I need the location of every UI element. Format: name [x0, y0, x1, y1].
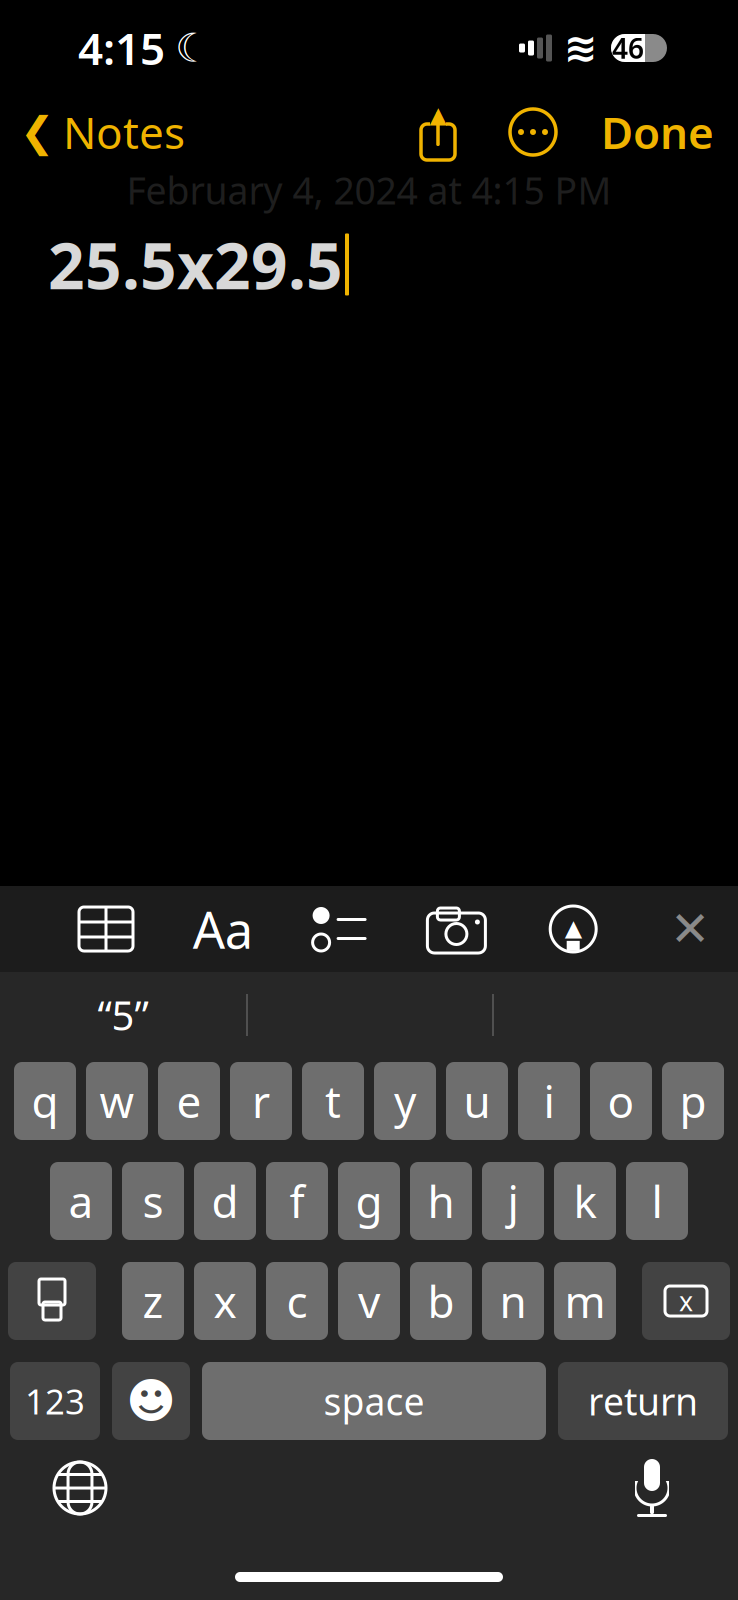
staticText: ▲	[429, 102, 446, 128]
button[interactable]: Close	[652, 893, 728, 965]
staticText: 4:15	[78, 19, 165, 77]
button[interactable]: Done	[601, 95, 738, 169]
button[interactable]: Camera	[418, 893, 494, 965]
button[interactable]: “5”	[0, 980, 246, 1050]
button[interactable]: q	[14, 1062, 76, 1140]
button[interactable]: i	[518, 1062, 580, 1140]
button[interactable]: Dictate	[608, 1449, 696, 1527]
staticText: ☾	[175, 25, 211, 71]
button[interactable]: ❮	[0, 95, 185, 169]
button[interactable]: Switch keyboard	[36, 1449, 124, 1527]
staticText: w	[99, 1072, 134, 1130]
staticText: u	[463, 1072, 490, 1130]
button[interactable]: a	[50, 1162, 112, 1240]
button[interactable]: space	[202, 1362, 546, 1440]
staticText: Notes	[63, 103, 185, 161]
button[interactable]: Shift	[8, 1262, 96, 1340]
staticText: 123	[25, 1378, 85, 1424]
staticText: x	[679, 1283, 693, 1319]
button[interactable]: Table	[68, 893, 144, 965]
staticText: ❮	[20, 108, 55, 155]
staticText: y	[394, 1072, 416, 1130]
staticText: p	[679, 1072, 706, 1130]
button[interactable]: Emoji	[112, 1362, 190, 1440]
button[interactable]: s	[122, 1162, 184, 1240]
button[interactable]: l	[626, 1162, 688, 1240]
staticText: February 4, 2024 at 4:15 PM	[126, 165, 611, 215]
staticText: Done	[601, 103, 714, 161]
staticText: Aa	[193, 895, 253, 963]
staticText: o	[607, 1072, 634, 1130]
staticText: 46	[612, 29, 644, 67]
button[interactable]: x	[194, 1262, 256, 1340]
staticText: f	[289, 1172, 304, 1230]
staticText: 25.5x29.5	[48, 222, 343, 307]
button[interactable]: e	[158, 1062, 220, 1140]
staticText: n	[499, 1272, 526, 1330]
button[interactable]: Share	[415, 105, 461, 159]
staticText: h	[427, 1172, 454, 1230]
staticText: ▲	[565, 915, 582, 941]
button[interactable]: f	[266, 1162, 328, 1240]
staticText: return	[588, 1376, 698, 1426]
staticText: z	[142, 1272, 163, 1330]
button[interactable]: y	[374, 1062, 436, 1140]
staticText: “5”	[97, 988, 148, 1041]
button[interactable]: k	[554, 1162, 616, 1240]
button[interactable]: h	[410, 1162, 472, 1240]
staticText: m	[564, 1272, 605, 1330]
button[interactable]: w	[86, 1062, 148, 1140]
staticText: space	[323, 1376, 424, 1426]
button[interactable]: v	[338, 1262, 400, 1340]
button[interactable]: 123	[10, 1362, 100, 1440]
button[interactable]: g	[338, 1162, 400, 1240]
button[interactable]: Markup	[535, 893, 611, 965]
button[interactable]: return	[558, 1362, 728, 1440]
button[interactable]: Format	[185, 893, 261, 965]
button[interactable]: n	[482, 1262, 544, 1340]
staticText: ☻	[126, 1374, 176, 1428]
staticText: t	[325, 1072, 341, 1130]
button[interactable]: c	[266, 1262, 328, 1340]
button[interactable]: j	[482, 1162, 544, 1240]
button[interactable]: m	[554, 1262, 616, 1340]
button[interactable]: o	[590, 1062, 652, 1140]
staticText: s	[142, 1172, 163, 1230]
button[interactable]: t	[302, 1062, 364, 1140]
button[interactable]: u	[446, 1062, 508, 1140]
button[interactable]: p	[662, 1062, 724, 1140]
button[interactable]: More	[509, 108, 557, 156]
button[interactable]: Delete	[642, 1262, 730, 1340]
button[interactable]: d	[194, 1162, 256, 1240]
button[interactable]: r	[230, 1062, 292, 1140]
staticText: ✕	[670, 902, 710, 956]
button[interactable]: b	[410, 1262, 472, 1340]
staticText: g	[355, 1172, 382, 1230]
staticText: e	[176, 1072, 201, 1130]
staticText: k	[573, 1172, 596, 1230]
staticText: q	[31, 1072, 58, 1130]
staticText: v	[358, 1272, 380, 1330]
button[interactable]: z	[122, 1262, 184, 1340]
staticText: i	[543, 1072, 554, 1130]
staticText: j	[507, 1172, 518, 1230]
staticText: ≋	[564, 25, 598, 71]
button[interactable]: Checklist	[302, 893, 378, 965]
staticText: x	[213, 1272, 236, 1330]
staticText: a	[68, 1172, 93, 1230]
staticText: b	[427, 1272, 454, 1330]
staticText: d	[211, 1172, 238, 1230]
staticText: l	[651, 1172, 662, 1230]
staticText: c	[286, 1272, 307, 1330]
staticText: r	[252, 1072, 270, 1130]
